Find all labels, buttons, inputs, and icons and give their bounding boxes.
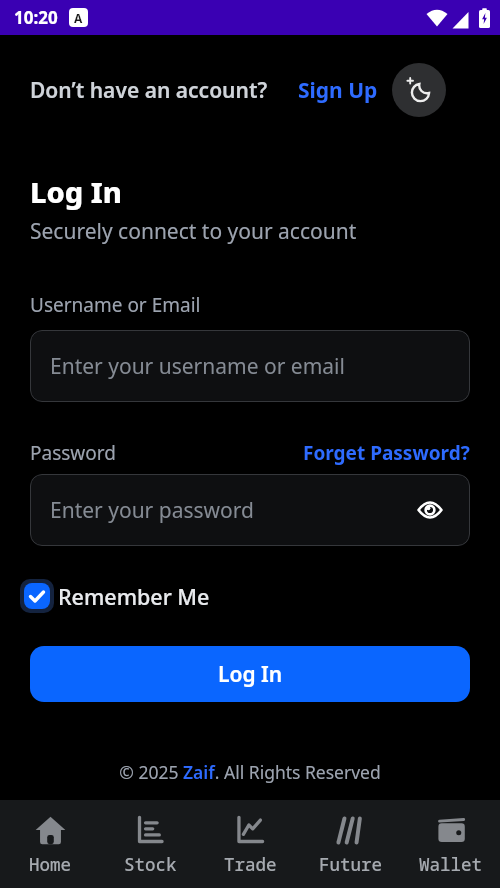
button[interactable]: Wallet bbox=[400, 800, 500, 888]
staticText: Username or Email bbox=[30, 292, 201, 318]
staticText: Log In bbox=[30, 172, 122, 211]
staticText: Remember Me bbox=[58, 582, 210, 611]
button[interactable] bbox=[392, 63, 446, 117]
staticText: Enter your username or email bbox=[50, 352, 345, 381]
staticText: Password bbox=[30, 440, 116, 466]
staticText: 10:20 bbox=[14, 6, 58, 29]
button[interactable]: Stock bbox=[100, 800, 200, 888]
staticText: Enter your password bbox=[50, 496, 254, 525]
staticText: Sign Up bbox=[298, 76, 378, 105]
staticText: Securely connect to your account bbox=[30, 217, 357, 246]
button[interactable]: Enter your password bbox=[30, 474, 470, 546]
button[interactable]: Forget Password? bbox=[303, 440, 470, 466]
button[interactable]: Remember Me bbox=[20, 579, 210, 613]
button[interactable]: Enter your username or email bbox=[30, 330, 470, 402]
staticText: Wallet bbox=[419, 852, 482, 876]
button[interactable]: Home bbox=[0, 800, 100, 888]
staticText: Forget Password? bbox=[303, 440, 470, 466]
staticText: Trade bbox=[224, 852, 277, 876]
button[interactable]: Trade bbox=[200, 800, 300, 888]
staticText: Log In bbox=[218, 660, 283, 689]
staticText: © 2025 Zaif. All Rights Reserved bbox=[30, 760, 470, 784]
button[interactable]: Future bbox=[300, 800, 400, 888]
staticText: A bbox=[74, 10, 83, 26]
staticText: Stock bbox=[124, 852, 177, 876]
staticText: Don’t have an account? bbox=[30, 76, 268, 105]
button[interactable]: Log In bbox=[30, 646, 470, 702]
staticText: Future bbox=[319, 852, 382, 876]
staticText: Home bbox=[29, 852, 71, 876]
button[interactable]: Sign Up bbox=[298, 76, 378, 105]
